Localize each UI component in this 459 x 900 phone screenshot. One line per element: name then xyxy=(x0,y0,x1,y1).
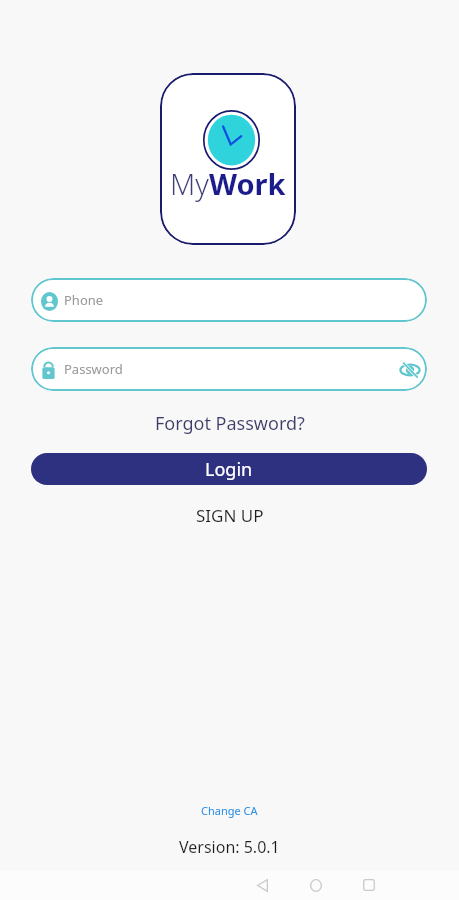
staticText: Work xyxy=(209,164,286,203)
staticText: Forgot Password? xyxy=(155,411,305,436)
button[interactable]: Home xyxy=(302,871,330,899)
button[interactable]: Login xyxy=(31,453,427,485)
button[interactable]: Recent apps xyxy=(355,871,383,899)
button[interactable]: SIGN UP xyxy=(188,501,272,530)
button[interactable]: Back xyxy=(248,871,276,899)
staticText: Version: 5.0.1 xyxy=(179,836,280,858)
staticText: Phone xyxy=(64,291,104,309)
staticText: Password xyxy=(64,360,123,378)
button[interactable]: Show password xyxy=(399,359,420,380)
staticText: Change CA xyxy=(201,803,258,818)
button[interactable]: Change CA xyxy=(195,800,264,821)
button[interactable]: Phone xyxy=(31,278,427,322)
button[interactable]: Forgot Password? xyxy=(149,409,311,438)
staticText: Login xyxy=(205,457,253,482)
staticText: My xyxy=(170,164,209,203)
staticText: SIGN UP xyxy=(196,504,264,527)
button[interactable]: Password xyxy=(31,347,427,391)
